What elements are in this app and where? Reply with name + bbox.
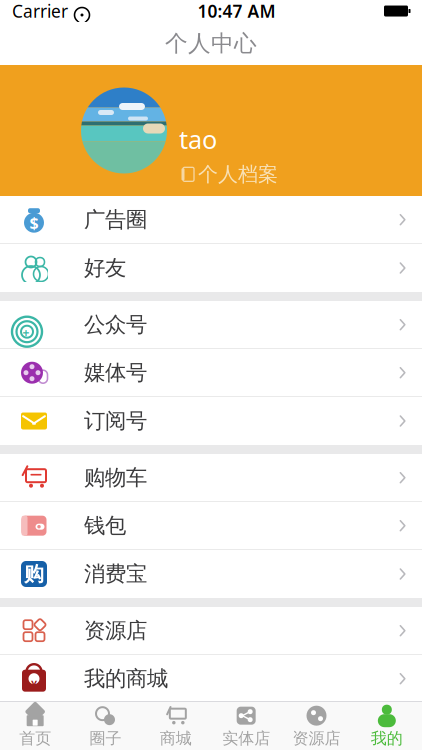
staticText: 个人中心 bbox=[165, 30, 257, 57]
staticText: ¥ bbox=[31, 678, 37, 692]
staticText: 购 bbox=[24, 562, 44, 586]
staticText: + bbox=[22, 325, 29, 341]
button[interactable]: 资源店 bbox=[0, 607, 422, 655]
staticText: 钱包 bbox=[84, 513, 126, 539]
staticText: 资源店 bbox=[84, 618, 147, 644]
button[interactable]: ¥ bbox=[0, 655, 422, 703]
button[interactable]: 圈子 bbox=[70, 700, 141, 750]
staticText: 好友 bbox=[84, 255, 126, 281]
button[interactable]: + bbox=[0, 301, 422, 349]
button[interactable]: 钱包 bbox=[0, 502, 422, 550]
staticText: 个人档案 bbox=[198, 162, 278, 187]
button[interactable]: 好友 bbox=[0, 244, 422, 292]
button[interactable]: 个人档案 bbox=[179, 162, 278, 187]
staticText: 实体店 bbox=[222, 729, 270, 748]
button[interactable]: 购 bbox=[0, 550, 422, 598]
staticText: 购物车 bbox=[84, 465, 147, 491]
button[interactable]: 购物车 bbox=[0, 454, 422, 502]
staticText: $ bbox=[29, 212, 38, 233]
staticText: 我的商城 bbox=[84, 666, 168, 692]
staticText: 订阅号 bbox=[84, 408, 147, 434]
button[interactable]: 我的 bbox=[352, 700, 422, 750]
button[interactable]: 首页 bbox=[0, 700, 70, 750]
staticText: 商城 bbox=[160, 729, 192, 748]
staticText: 首页 bbox=[19, 729, 51, 748]
staticText: 资源店 bbox=[292, 729, 340, 748]
staticText: 广告圈 bbox=[84, 207, 147, 233]
staticText: 我的 bbox=[371, 729, 403, 748]
staticText: 圈子 bbox=[89, 729, 121, 748]
button[interactable]: 商城 bbox=[141, 700, 211, 750]
staticText: Carrier bbox=[12, 0, 68, 22]
staticText: 消费宝 bbox=[84, 561, 147, 587]
button[interactable]: 资源店 bbox=[281, 700, 352, 750]
staticText: 公众号 bbox=[84, 312, 147, 338]
staticText: 媒体号 bbox=[84, 360, 147, 386]
staticText: tao bbox=[179, 122, 217, 156]
button[interactable]: 订阅号 bbox=[0, 397, 422, 445]
button[interactable]: 实体店 bbox=[211, 700, 281, 750]
staticText: 10:47 AM bbox=[197, 0, 275, 22]
button[interactable]: 媒体号 bbox=[0, 349, 422, 397]
button[interactable]: $ bbox=[0, 196, 422, 244]
